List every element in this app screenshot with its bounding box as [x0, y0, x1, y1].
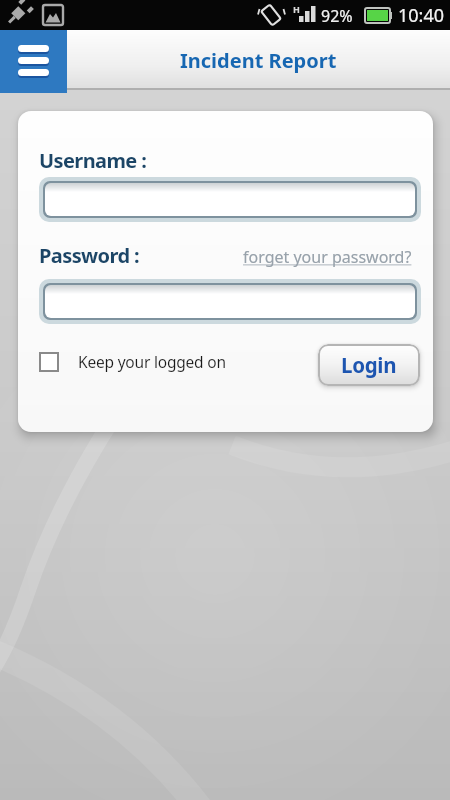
button[interactable]: forget your password? — [243, 246, 412, 268]
staticText: Keep your logged on — [78, 351, 226, 372]
button[interactable]: Login — [318, 344, 420, 386]
button[interactable]: Keep your logged on — [39, 351, 226, 372]
staticText: 10:40 — [398, 3, 445, 28]
staticText: Login — [341, 351, 397, 379]
staticText: Username : — [39, 147, 147, 174]
button[interactable] — [39, 177, 421, 222]
staticText: H — [293, 3, 300, 15]
button[interactable] — [39, 279, 421, 324]
button[interactable] — [0, 30, 67, 93]
staticText: Incident Report — [180, 47, 337, 74]
staticText: 92% — [321, 5, 353, 27]
staticText: Password : — [39, 242, 140, 269]
